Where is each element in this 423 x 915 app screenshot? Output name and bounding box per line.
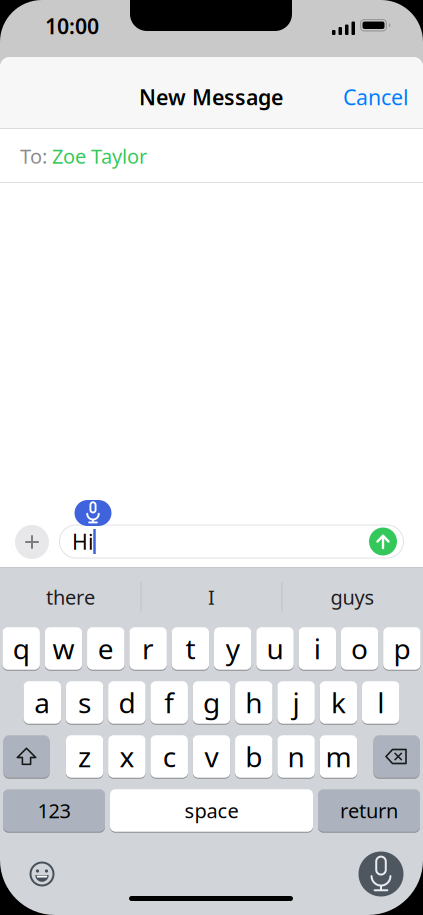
staticText: p	[393, 630, 410, 667]
button[interactable]: Shift	[3, 735, 49, 778]
staticText: t	[185, 630, 195, 667]
button[interactable]: Message text field	[59, 524, 404, 558]
button[interactable]: o	[341, 627, 378, 670]
button[interactable]: Dictation	[74, 500, 111, 526]
staticText: To:	[20, 143, 47, 169]
staticText: f	[164, 684, 174, 721]
staticText: return	[340, 797, 398, 824]
button[interactable]: u	[256, 627, 294, 670]
button[interactable]: return	[318, 789, 420, 832]
button[interactable]: l	[362, 681, 399, 724]
button[interactable]: 123	[3, 789, 105, 832]
staticText: y	[226, 630, 240, 667]
button[interactable]: b	[235, 735, 273, 778]
staticText: I	[208, 584, 215, 610]
staticText: New Message	[139, 83, 283, 111]
staticText: x	[119, 738, 134, 775]
button[interactable]: v	[193, 735, 230, 778]
button[interactable]: space	[110, 789, 313, 832]
button[interactable]: j	[277, 681, 315, 724]
button[interactable]: s	[66, 681, 103, 724]
button[interactable]: Delete	[373, 735, 419, 778]
staticText: u	[266, 630, 283, 667]
button[interactable]: Send	[369, 527, 397, 555]
staticText: guys	[330, 584, 374, 610]
staticText: k	[331, 684, 346, 721]
staticText: b	[245, 738, 262, 775]
staticText: n	[288, 738, 305, 775]
button[interactable]: e	[87, 627, 124, 670]
staticText: q	[13, 630, 30, 667]
button[interactable]: m	[320, 735, 357, 778]
button[interactable]: x	[108, 735, 146, 778]
button[interactable]: there	[1, 575, 139, 619]
staticText: space	[184, 797, 238, 824]
button[interactable]: k	[320, 681, 357, 724]
staticText: e	[98, 630, 114, 667]
staticText: Zoe Taylor	[52, 143, 147, 169]
staticText: m	[325, 738, 351, 775]
button[interactable]: f	[150, 681, 188, 724]
staticText: z	[78, 738, 91, 775]
button[interactable]: r	[129, 627, 167, 670]
staticText: 123	[37, 797, 70, 824]
button[interactable]: p	[383, 627, 421, 670]
button[interactable]: n	[277, 735, 315, 778]
staticText: j	[293, 684, 300, 721]
staticText: Cancel	[343, 83, 409, 111]
button[interactable]: i	[299, 627, 336, 670]
staticText: l	[377, 684, 384, 721]
staticText: Hi	[72, 527, 94, 556]
button[interactable]: Cancel	[343, 83, 409, 111]
button[interactable]: guys	[283, 575, 421, 619]
staticText: d	[118, 684, 135, 721]
button[interactable]: c	[150, 735, 188, 778]
button[interactable]: t	[172, 627, 209, 670]
button[interactable]: z	[66, 735, 103, 778]
staticText: g	[203, 684, 220, 721]
button[interactable]: Dictation	[358, 851, 403, 896]
button[interactable]: g	[193, 681, 230, 724]
button[interactable]: d	[108, 681, 146, 724]
button[interactable]: a	[23, 681, 61, 724]
button[interactable]: Emoji	[28, 860, 55, 887]
staticText: o	[351, 630, 368, 667]
staticText: 10:00	[45, 12, 99, 40]
button[interactable]: y	[214, 627, 251, 670]
button[interactable]: More options	[15, 525, 49, 559]
staticText: r	[142, 630, 154, 667]
button[interactable]: w	[45, 627, 82, 670]
staticText: s	[78, 684, 91, 721]
button[interactable]: q	[2, 627, 40, 670]
staticText: i	[314, 630, 321, 667]
button[interactable]: I	[142, 575, 280, 619]
staticText: h	[245, 684, 262, 721]
staticText: a	[34, 684, 50, 721]
staticText: c	[163, 738, 176, 775]
staticText: there	[46, 584, 95, 610]
staticText: v	[204, 738, 218, 775]
staticText: w	[52, 630, 74, 667]
button[interactable]: h	[235, 681, 273, 724]
